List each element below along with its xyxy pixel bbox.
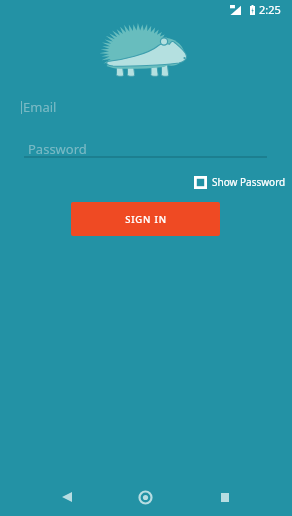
staticText: 2:25: [259, 2, 281, 17]
staticText: Password: [28, 140, 87, 158]
staticText: Show Password: [212, 175, 286, 189]
button[interactable]: Show Password: [194, 175, 286, 189]
button[interactable]: SIGN IN: [71, 202, 220, 236]
button[interactable]: Home: [123, 479, 168, 515]
button[interactable]: Back: [44, 479, 89, 515]
staticText: SIGN IN: [125, 213, 167, 226]
button[interactable]: Recent apps: [202, 479, 247, 515]
staticText: Email: [23, 98, 57, 116]
